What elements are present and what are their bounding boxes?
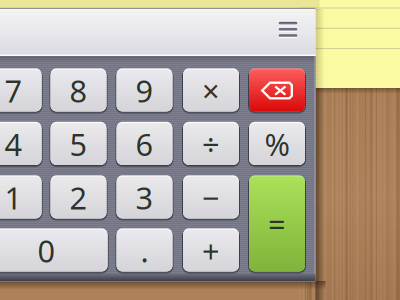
button[interactable]: × — [181, 68, 240, 113]
staticText: 5 — [69, 124, 87, 164]
button[interactable]: = — [247, 175, 306, 273]
button[interactable]: . — [115, 228, 174, 273]
staticText: 4 — [5, 124, 23, 164]
button[interactable]: 1 — [0, 175, 43, 220]
button[interactable]: 7 — [0, 68, 43, 113]
staticText: 6 — [135, 124, 153, 164]
staticText: × — [202, 70, 220, 111]
button[interactable]: Delete — [247, 68, 306, 113]
staticText: 3 — [135, 177, 153, 218]
button[interactable]: − — [181, 175, 240, 220]
staticText: 2 — [69, 177, 87, 218]
staticText: % — [264, 124, 289, 164]
staticText: + — [202, 230, 220, 271]
button[interactable]: Menu — [270, 16, 306, 48]
button[interactable]: 9 — [115, 68, 174, 113]
staticText: 8 — [69, 70, 87, 111]
staticText: 7 — [5, 70, 23, 111]
staticText: 9 — [135, 70, 153, 111]
staticText: 1 — [5, 177, 23, 218]
staticText: ÷ — [202, 124, 220, 164]
staticText: = — [268, 204, 286, 244]
button[interactable]: % — [247, 121, 306, 166]
button[interactable]: + — [181, 228, 240, 273]
staticText: . — [140, 230, 148, 271]
button[interactable]: 4 — [0, 121, 43, 166]
staticText: − — [202, 177, 220, 218]
button[interactable]: 2 — [49, 175, 108, 220]
staticText: 0 — [38, 230, 56, 271]
button[interactable]: 5 — [49, 121, 108, 166]
button[interactable]: 3 — [115, 175, 174, 220]
button[interactable]: 6 — [115, 121, 174, 166]
button[interactable]: ÷ — [181, 121, 240, 166]
button[interactable]: 8 — [49, 68, 108, 113]
button[interactable]: 0 — [0, 228, 109, 273]
